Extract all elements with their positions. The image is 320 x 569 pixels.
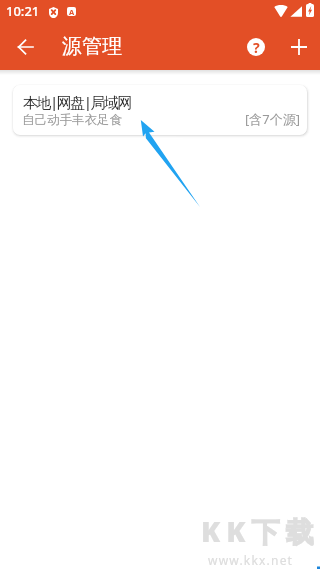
staticText: 本地|网盘|局域网: [23, 92, 132, 112]
staticText: 源管理: [62, 34, 122, 59]
staticText: ?: [253, 38, 260, 56]
staticText: 自己动手丰衣足食: [22, 112, 122, 128]
button[interactable]: 本地|网盘|局域网: [13, 85, 307, 135]
button[interactable]: Back: [6, 28, 44, 66]
staticText: [含7个源]: [245, 110, 300, 128]
staticText: www.kkx.net: [208, 552, 294, 568]
staticText: A: [69, 7, 75, 16]
staticText: 10:21: [6, 2, 40, 20]
button[interactable]: Add: [280, 28, 318, 66]
button[interactable]: Help: [237, 28, 275, 66]
staticText: KK下载: [201, 512, 320, 550]
